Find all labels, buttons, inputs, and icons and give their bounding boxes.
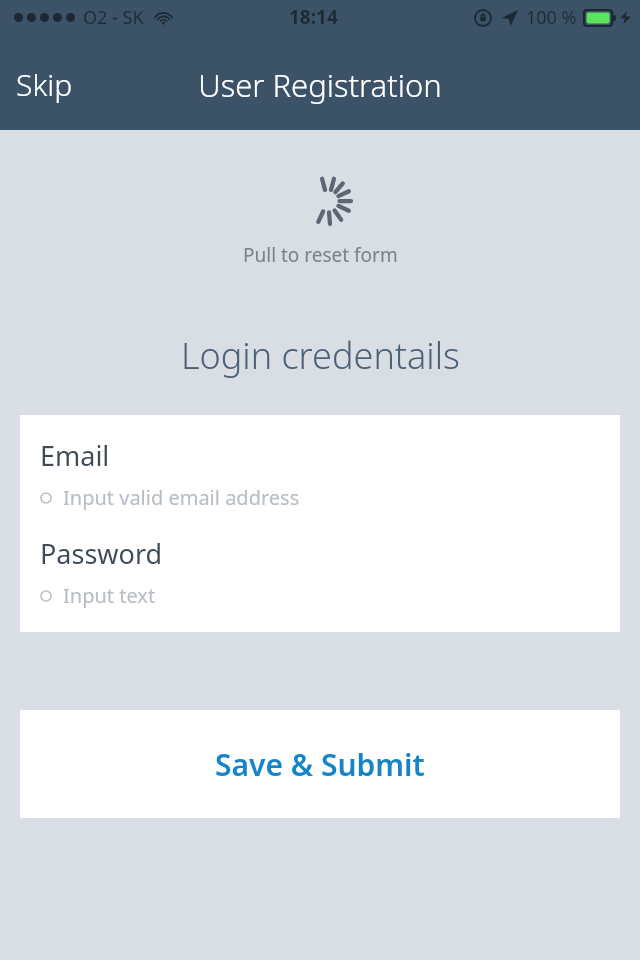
button[interactable]: Password bbox=[20, 511, 620, 609]
staticText: O2 - SK bbox=[83, 5, 144, 30]
staticText: Skip bbox=[16, 64, 73, 105]
staticText: Input valid email address bbox=[63, 484, 300, 511]
staticText: Pull to reset form bbox=[243, 242, 398, 268]
staticText: 18:14 bbox=[289, 4, 338, 30]
other: Loading bbox=[303, 176, 353, 226]
staticText: Password bbox=[40, 535, 163, 572]
button[interactable]: Skip bbox=[0, 58, 89, 111]
button[interactable]: Save & Submit bbox=[20, 710, 620, 818]
staticText: User Registration bbox=[198, 64, 442, 106]
staticText: Input text bbox=[63, 582, 156, 609]
staticText: Login credentails bbox=[181, 331, 460, 380]
staticText: Save & Submit bbox=[215, 744, 425, 785]
button[interactable]: Email bbox=[20, 415, 620, 511]
staticText: 100 % bbox=[526, 5, 577, 30]
staticText: Email bbox=[40, 437, 110, 474]
